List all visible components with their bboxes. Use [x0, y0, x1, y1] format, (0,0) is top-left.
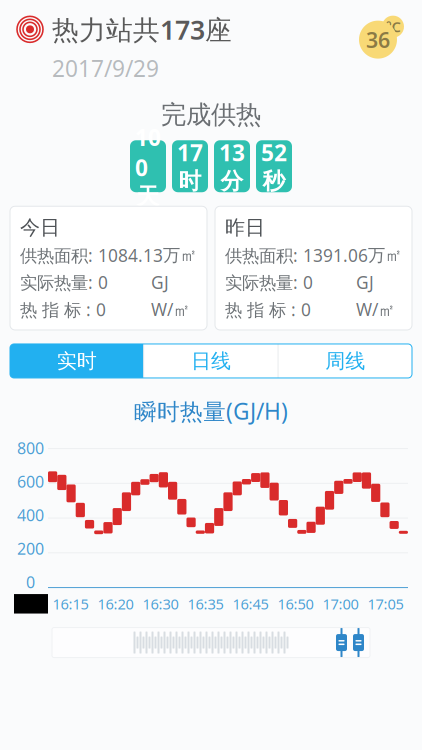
staticText: 16:30	[142, 594, 178, 614]
staticText: 100	[135, 122, 161, 182]
staticText: 17:00	[322, 594, 358, 614]
staticText: 分	[220, 167, 243, 195]
staticText: 2017/9/29	[52, 53, 159, 83]
staticText: 热 指 标 : 0	[225, 298, 311, 321]
staticText: 400	[17, 504, 44, 526]
staticText: GJ	[356, 271, 374, 294]
staticText: W/㎡	[356, 298, 395, 321]
staticText: 热 指 标 : 0	[20, 298, 106, 321]
staticText: 800	[17, 437, 44, 459]
staticText: 36	[366, 25, 390, 54]
staticText: 17	[177, 137, 203, 167]
staticText: 200	[17, 538, 44, 559]
staticText: 16:50	[277, 594, 313, 614]
staticText: GJ	[151, 271, 169, 294]
staticText: 600	[17, 471, 44, 492]
staticText: 热力站共173座	[52, 12, 232, 47]
staticText: 52	[261, 137, 287, 167]
staticText: 万㎡	[163, 245, 197, 266]
button[interactable]: 日线	[144, 344, 278, 378]
staticText: 0	[26, 571, 35, 593]
staticText: 16:45	[232, 594, 268, 614]
staticText: 今日	[20, 215, 60, 240]
staticText: 1084.13	[98, 244, 163, 267]
staticText: 日线	[191, 349, 231, 373]
staticText: 完成供热	[161, 99, 261, 130]
staticText: 万㎡	[368, 245, 402, 266]
staticText: 周线	[325, 349, 365, 373]
staticText: 1391.06	[303, 244, 368, 267]
button[interactable]: 实时	[10, 344, 143, 378]
staticText: 实际热量: 0	[225, 271, 313, 294]
staticText: 供热面积:	[225, 244, 303, 267]
staticText: 16:15	[52, 594, 88, 614]
staticText: 时	[178, 167, 201, 195]
button[interactable]: 周线	[279, 344, 412, 378]
staticText: 16:20	[97, 594, 133, 614]
staticText: 实时	[57, 349, 97, 373]
staticText: 昨日	[225, 215, 265, 240]
staticText: W/㎡	[151, 298, 190, 321]
staticText: °C	[385, 17, 400, 36]
staticText: 天	[136, 182, 159, 210]
staticText: 17:05	[367, 594, 403, 614]
staticText: 13	[219, 137, 245, 167]
staticText: 秒	[262, 167, 285, 195]
staticText: 瞬时热量(GJ/H)	[134, 396, 288, 426]
staticText: 供热面积:	[20, 244, 98, 267]
staticText: 实际热量: 0	[20, 271, 108, 294]
staticText: 16:35	[187, 594, 223, 614]
